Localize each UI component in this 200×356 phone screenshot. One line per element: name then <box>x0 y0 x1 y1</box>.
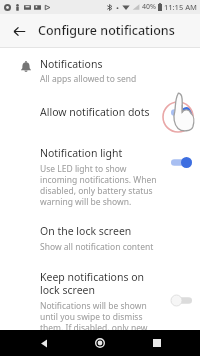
staticText: Notifications will be shown until you sw… <box>40 300 165 330</box>
button[interactable]: Keep notifications on lock screen <box>0 270 200 330</box>
button[interactable]: Notifications <box>0 48 200 91</box>
staticText: 11:15 AM <box>164 2 197 12</box>
button[interactable]: On the lock screen <box>0 224 200 253</box>
staticText: 40% <box>142 2 156 12</box>
button[interactable]: Allow notification dots <box>0 101 200 123</box>
button[interactable]: Back <box>31 330 57 356</box>
staticText: All apps allowed to send <box>40 73 137 85</box>
staticText: On the lock screen <box>40 224 132 238</box>
button[interactable]: Recent apps <box>144 330 170 356</box>
staticText: Show all notification content <box>40 241 154 253</box>
button[interactable]: Home <box>87 330 113 356</box>
button[interactable]: Back <box>6 18 32 44</box>
staticText: Configure notifications <box>38 22 175 39</box>
button[interactable]: Notification light <box>0 146 200 207</box>
staticText: Keep notifications on lock screen <box>40 270 165 297</box>
staticText: Allow notification dots <box>40 105 171 119</box>
staticText: Use LED light to show incoming notificat… <box>40 163 165 207</box>
staticText: Notifications <box>40 57 103 71</box>
staticText: Notification light <box>40 146 123 160</box>
